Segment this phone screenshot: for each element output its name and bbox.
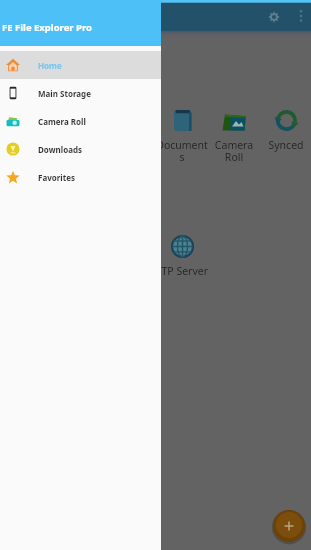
staticText: FE File Explorer Pro xyxy=(2,21,92,34)
button[interactable]: Camera Roll xyxy=(208,108,260,164)
staticText: Main Storage xyxy=(0,138,52,164)
button[interactable]: More options xyxy=(291,6,310,25)
staticText: Downloads xyxy=(38,144,82,155)
button[interactable]: Downloads xyxy=(0,135,161,163)
button[interactable]: Home xyxy=(0,51,161,79)
staticText: Camera Roll xyxy=(208,138,260,164)
button[interactable]: Synced xyxy=(260,108,311,152)
staticText: Favorites xyxy=(38,172,75,183)
button[interactable]: Favorites xyxy=(0,163,161,191)
staticText: Synced xyxy=(260,138,311,152)
button[interactable]: Main Storage xyxy=(0,108,52,164)
staticText: Main Storage xyxy=(38,88,91,99)
button[interactable]: Main Storage xyxy=(0,79,161,107)
button[interactable]: Documents xyxy=(156,108,208,164)
button[interactable]: Settings xyxy=(263,6,284,27)
staticText: Camera Roll xyxy=(38,116,86,127)
button[interactable]: Camera Roll xyxy=(0,107,161,135)
button[interactable]: Add xyxy=(272,509,306,543)
staticText: Home xyxy=(38,60,62,71)
staticText: Downloads xyxy=(52,138,104,164)
button[interactable]: FTP Server xyxy=(156,234,208,278)
staticText: FTP Server xyxy=(156,264,208,278)
button[interactable]: Downloads xyxy=(52,108,104,164)
staticText: Documents xyxy=(156,138,208,164)
